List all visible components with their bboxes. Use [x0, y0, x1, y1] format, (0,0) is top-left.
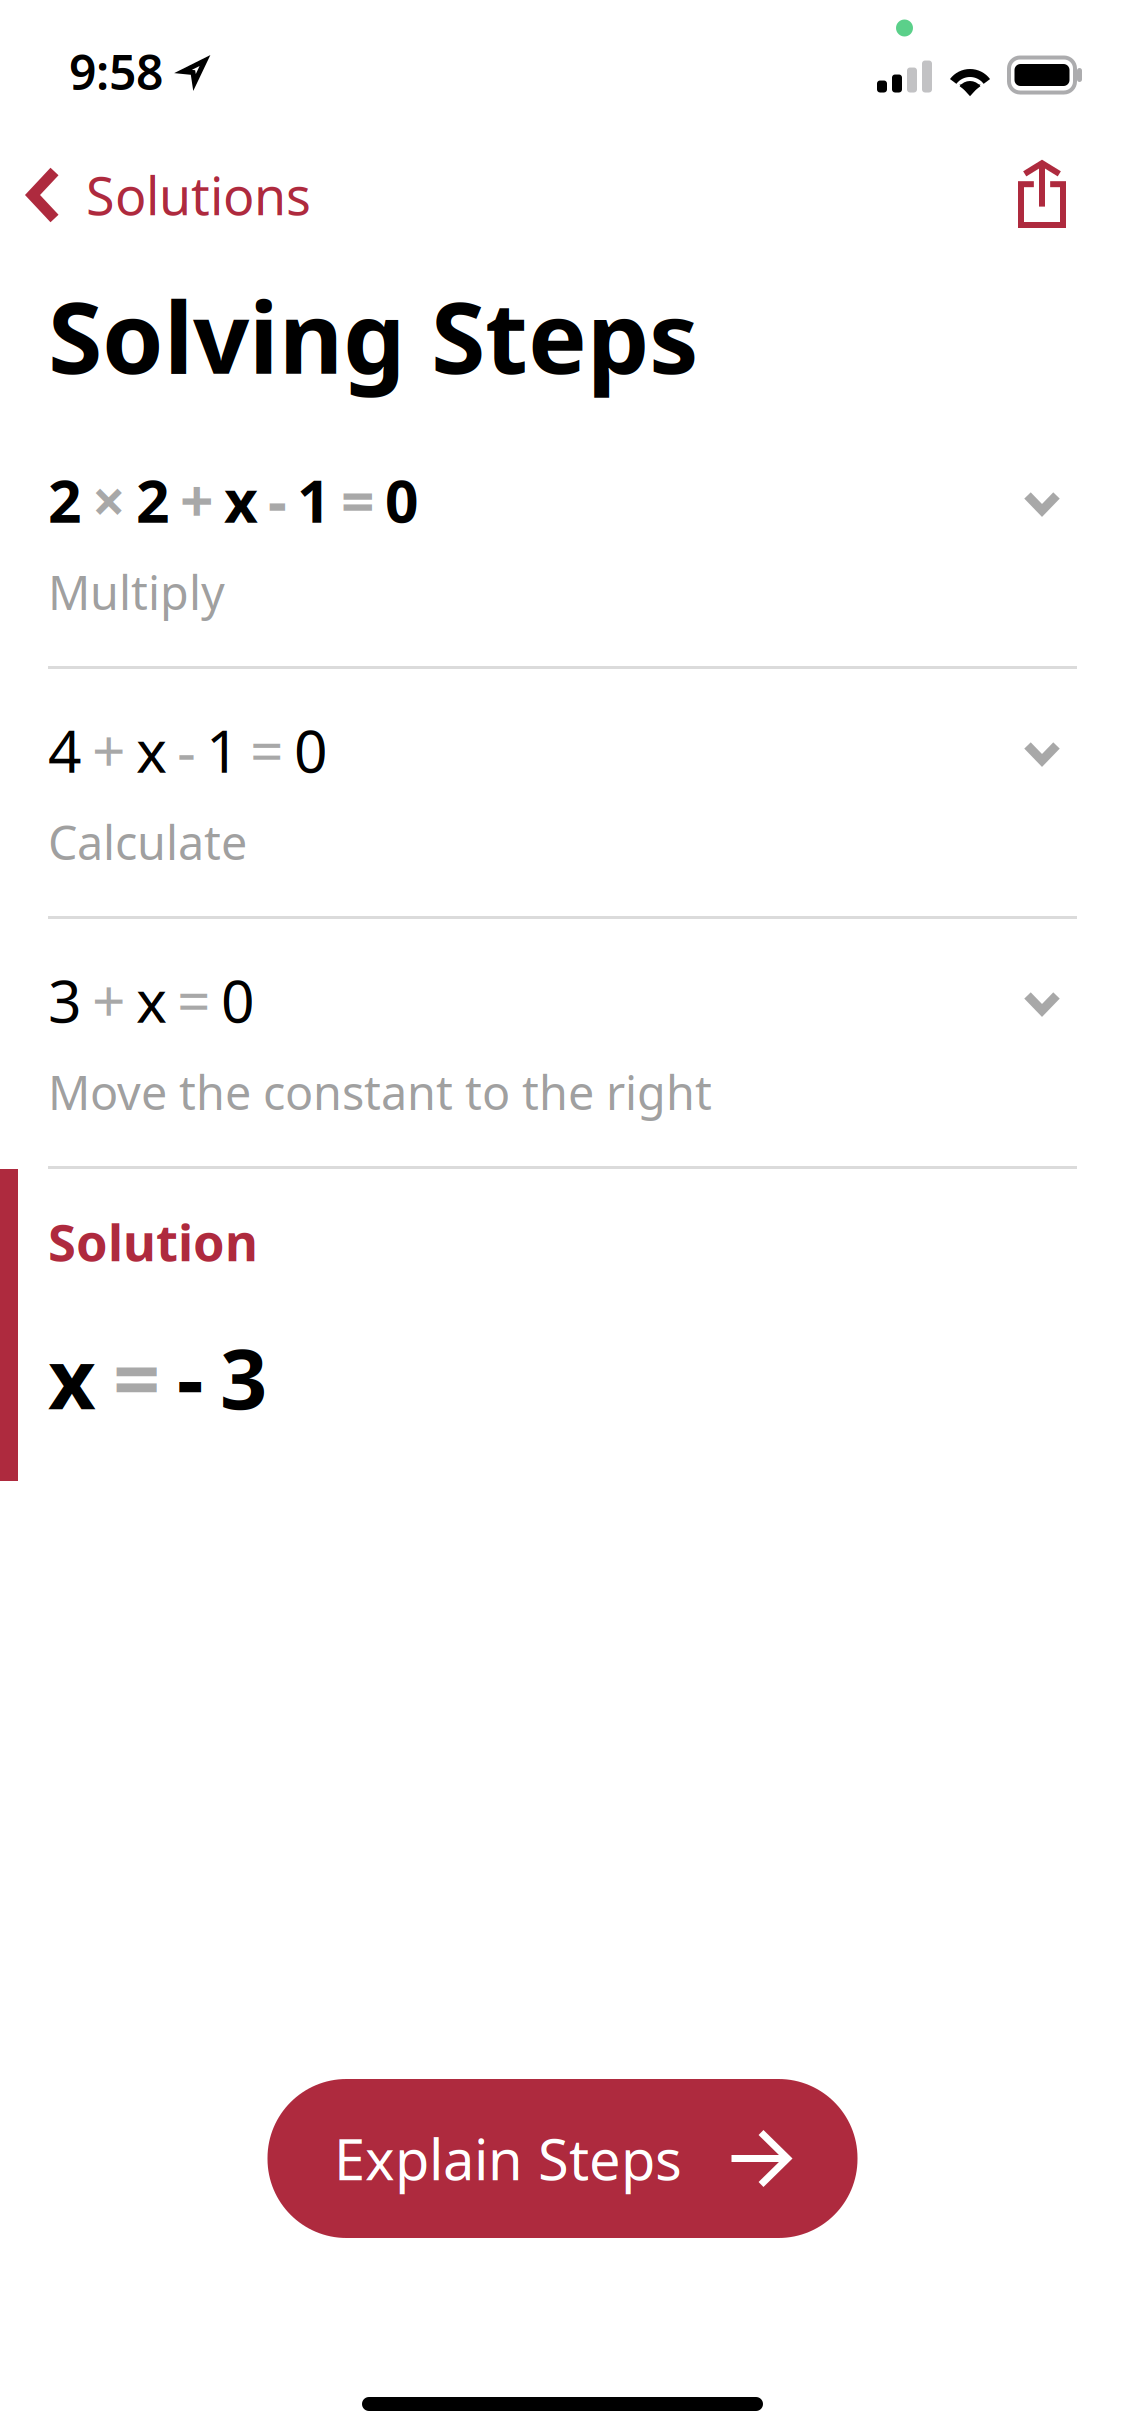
- staticText: 1: [206, 711, 240, 789]
- staticText: 4: [48, 711, 82, 789]
- staticText: +: [180, 461, 214, 539]
- staticText: 3: [48, 961, 82, 1039]
- staticText: x: [224, 461, 258, 539]
- staticText: 2: [48, 461, 82, 539]
- staticText: 3: [220, 1322, 267, 1432]
- staticText: Solutions: [86, 160, 311, 230]
- staticText: x: [136, 711, 167, 789]
- staticText: Solution: [48, 1208, 258, 1275]
- staticText: +: [92, 711, 126, 789]
- staticText: =: [250, 711, 284, 789]
- staticText: 1: [297, 461, 331, 539]
- button[interactable]: 4: [0, 669, 1125, 919]
- button[interactable]: 2: [0, 419, 1125, 669]
- staticText: ×: [92, 461, 126, 539]
- staticText: =: [177, 961, 211, 1039]
- button[interactable]: Solutions: [0, 132, 311, 252]
- staticText: Multiply: [48, 561, 225, 623]
- staticText: Move the constant to the right: [48, 1061, 712, 1123]
- staticText: x: [48, 1322, 96, 1432]
- staticText: x: [136, 961, 167, 1039]
- staticText: 0: [385, 461, 419, 539]
- staticText: -: [177, 711, 196, 789]
- button[interactable]: Explain Steps: [267, 2079, 857, 2238]
- staticText: 2: [136, 461, 170, 539]
- staticText: 0: [294, 711, 328, 789]
- staticText: =: [113, 1322, 160, 1432]
- staticText: -: [268, 461, 287, 539]
- button[interactable]: Share: [1018, 132, 1125, 252]
- staticText: 9:58: [69, 40, 163, 103]
- staticText: =: [341, 461, 375, 539]
- button[interactable]: 3: [0, 919, 1125, 1169]
- staticText: +: [92, 961, 126, 1039]
- staticText: -: [177, 1322, 203, 1432]
- staticText: Solving Steps: [48, 270, 699, 401]
- staticText: Calculate: [48, 811, 247, 873]
- staticText: 0: [221, 961, 255, 1039]
- staticText: Explain Steps: [334, 2121, 682, 2196]
